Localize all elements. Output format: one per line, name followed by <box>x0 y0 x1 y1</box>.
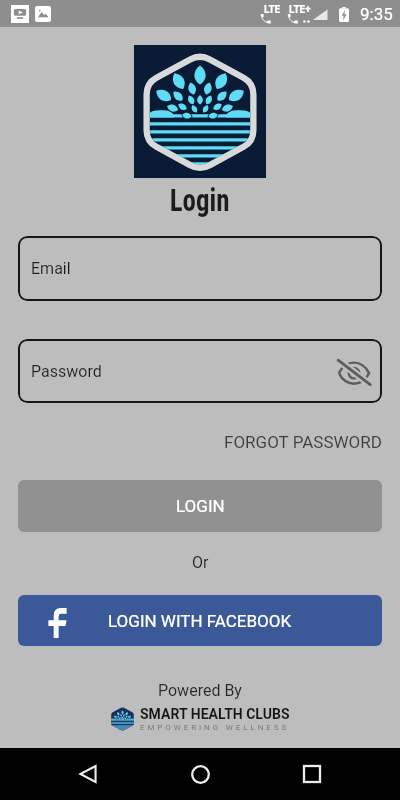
staticText: Email <box>31 259 71 278</box>
staticText: LTE+ <box>289 4 311 16</box>
button[interactable]: Back <box>64 750 112 798</box>
button[interactable]: FORGOT PASSWORD <box>224 432 400 452</box>
staticText: Login <box>170 181 230 219</box>
button[interactable]: Password <box>18 339 382 403</box>
button[interactable]: Recent apps <box>288 750 336 798</box>
staticText: Or <box>192 553 209 572</box>
button[interactable]: LOGIN WITH FACEBOOK <box>18 595 382 646</box>
staticText: LTE <box>264 4 281 16</box>
staticText: EMPOWERING WELLNESS <box>140 723 290 732</box>
button[interactable]: Home <box>176 750 224 798</box>
staticText: LOGIN WITH FACEBOOK <box>108 611 292 631</box>
staticText: SMART HEALTH CLUBS <box>140 706 290 722</box>
staticText: Powered By <box>158 681 242 700</box>
staticText: 9:35 <box>360 4 393 24</box>
staticText: LOGIN <box>176 496 225 516</box>
button[interactable]: LOGIN <box>18 480 382 532</box>
button[interactable]: Show password <box>336 353 372 389</box>
button[interactable]: Email <box>18 236 382 301</box>
staticText: Password <box>31 362 102 381</box>
